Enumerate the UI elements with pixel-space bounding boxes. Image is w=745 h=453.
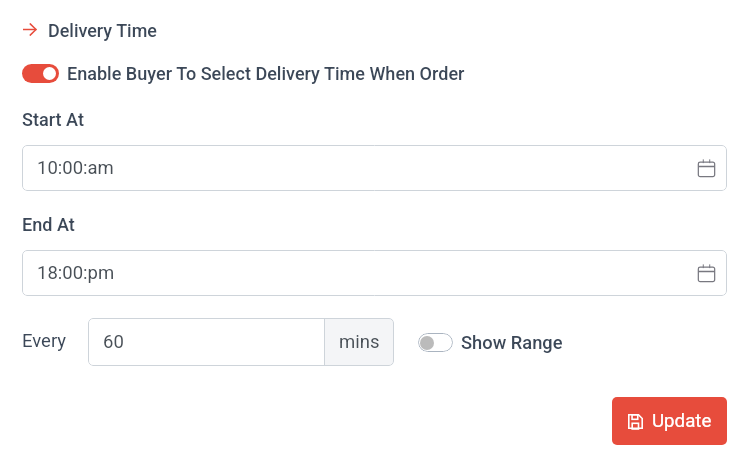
button[interactable]: Enable buyer to select delivery time, on [22,64,59,83]
button[interactable]: Back [23,18,157,42]
staticText: 10:00:am [37,157,114,179]
staticText: mins [339,331,380,353]
button[interactable]: 60 [88,318,394,366]
staticText: Show Range [461,332,563,353]
staticText: Update [652,410,712,432]
staticText: 18:00:pm [37,262,115,284]
button[interactable]: 18:00:pm [22,250,727,296]
staticText: Delivery Time [48,20,157,41]
button[interactable]: 10:00:am [22,145,727,191]
button[interactable]: Enable buyer to select delivery time, on [22,61,465,85]
other: Pick date [697,159,716,178]
button[interactable]: Show range, off [418,330,563,354]
button[interactable]: Show range, off [418,333,453,352]
other: Back [23,18,36,42]
staticText: Every [22,330,67,352]
staticText: Start At [22,109,84,130]
other: Pick date [697,264,716,283]
button[interactable]: Update [612,397,727,445]
staticText: End At [22,214,75,235]
staticText: 60 [103,331,124,353]
staticText: Enable Buyer To Select Delivery Time Whe… [67,63,465,84]
